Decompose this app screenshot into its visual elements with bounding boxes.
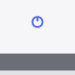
button[interactable]: Power xyxy=(0,0,75,53)
